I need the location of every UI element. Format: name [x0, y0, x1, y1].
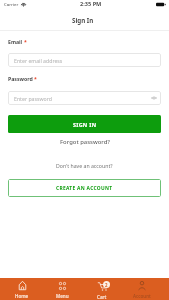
button[interactable]: Account — [122, 278, 162, 300]
button[interactable]: Home — [2, 278, 42, 300]
button[interactable]: SIGN IN — [8, 115, 161, 133]
button[interactable]: Forgot password? — [56, 136, 114, 148]
staticText: 2:35 PM — [80, 0, 102, 8]
staticText: Don't have an account? — [56, 162, 113, 169]
staticText: Account — [133, 293, 151, 299]
button[interactable]: 2 — [82, 278, 122, 300]
button[interactable]: Enter email address — [8, 53, 161, 67]
button[interactable]: Menu — [42, 278, 82, 300]
staticText: Email — [8, 38, 23, 45]
staticText: Enter email address — [14, 57, 63, 64]
button[interactable]: CREATE AN ACCOUNT — [8, 179, 161, 197]
staticText: * — [34, 75, 37, 82]
other: Show password — [151, 95, 157, 101]
staticText: Cart — [97, 294, 107, 300]
staticText: 2 — [105, 282, 108, 288]
staticText: SIGN IN — [73, 121, 97, 128]
staticText: Sign In — [72, 16, 94, 24]
staticText: * — [24, 38, 27, 45]
staticText: Home — [15, 293, 29, 299]
staticText: Menu — [56, 293, 69, 299]
staticText: Carrier — [4, 1, 19, 7]
button[interactable]: Enter password — [8, 91, 161, 105]
staticText: Enter password — [14, 95, 52, 102]
staticText: Password — [8, 75, 33, 82]
staticText: CREATE AN ACCOUNT — [56, 185, 113, 192]
